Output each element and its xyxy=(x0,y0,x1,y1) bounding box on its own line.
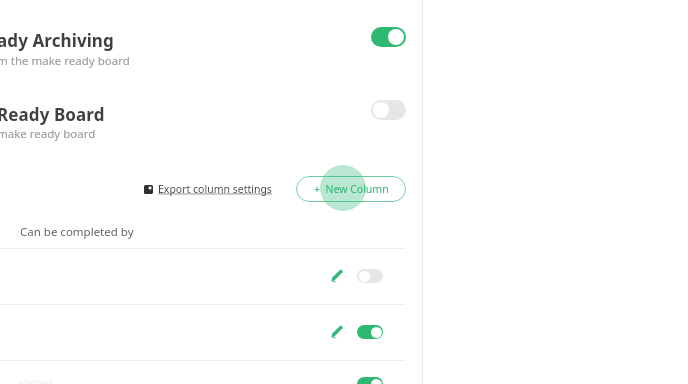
staticText: ady Archiving xyxy=(0,29,114,52)
staticText: + New Column xyxy=(314,182,389,196)
button[interactable]: Toggle row 1 xyxy=(357,269,383,283)
staticText: make ready board xyxy=(0,126,96,142)
button[interactable]: Toggle make ready board xyxy=(371,100,406,120)
button[interactable]: Export column settings xyxy=(143,178,277,200)
button[interactable]: elected xyxy=(0,360,422,384)
staticText: Can be completed by xyxy=(20,224,134,240)
button[interactable]: + New Column xyxy=(296,176,406,202)
staticText: Ready Board xyxy=(0,103,105,126)
button[interactable]: Toggle row 3 xyxy=(357,377,383,384)
button[interactable]: Edit xyxy=(329,324,345,340)
button[interactable]: Toggle make ready archiving xyxy=(371,27,406,47)
staticText: elected xyxy=(18,376,53,384)
staticText: Export column settings xyxy=(158,182,272,196)
button[interactable]: Edit xyxy=(0,248,422,304)
button[interactable]: Edit xyxy=(0,304,422,360)
button[interactable]: Edit xyxy=(329,268,345,284)
button[interactable]: Toggle row 2 xyxy=(357,325,383,339)
staticText: m the make ready board xyxy=(0,53,130,69)
